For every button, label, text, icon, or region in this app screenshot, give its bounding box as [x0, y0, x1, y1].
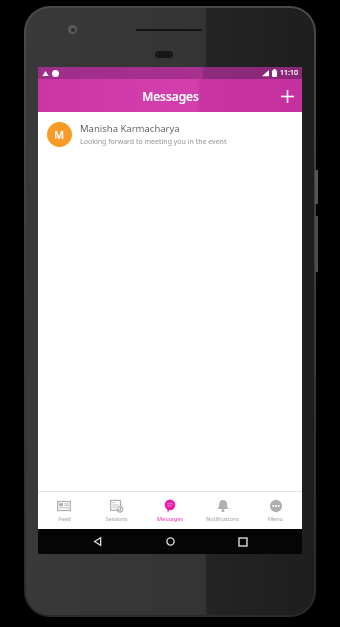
button[interactable]: Menu	[249, 495, 302, 526]
button[interactable]: M	[38, 112, 302, 157]
button[interactable]: Home	[158, 529, 183, 554]
staticText: Looking forward to meeting you in the ev…	[80, 137, 227, 147]
staticText: Notifications	[206, 515, 239, 522]
staticText: Manisha Karmacharya	[80, 122, 180, 135]
button[interactable]: Recent apps	[230, 529, 255, 554]
staticText: M	[54, 127, 65, 142]
staticText: Sessions	[105, 515, 128, 522]
staticText: Feed	[58, 515, 71, 522]
staticText: Messages	[157, 515, 183, 522]
staticText: Messages	[142, 88, 199, 104]
button[interactable]: Back	[85, 529, 110, 554]
button[interactable]: New message	[272, 81, 302, 111]
button[interactable]: Sessions	[90, 495, 143, 526]
button[interactable]: Messages	[143, 495, 196, 526]
staticText: Menu	[268, 515, 283, 522]
button[interactable]: Notifications	[196, 495, 249, 526]
staticText: 11:10	[280, 68, 298, 78]
button[interactable]: Feed	[38, 495, 90, 526]
